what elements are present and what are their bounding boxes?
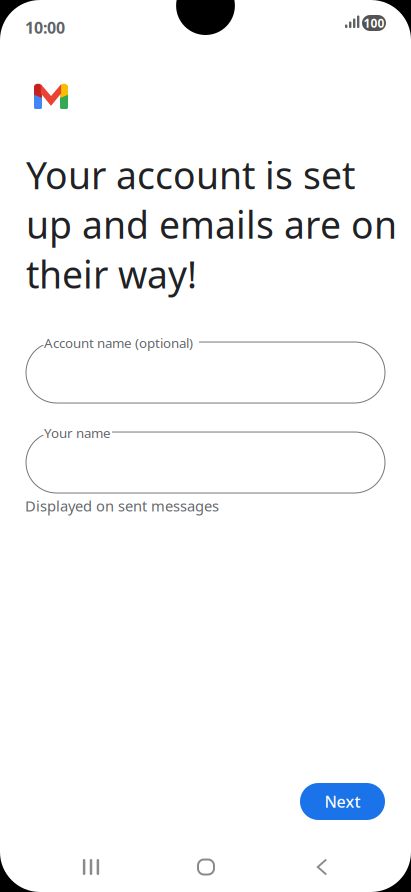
button[interactable]: Back <box>286 843 358 891</box>
button[interactable]: Your name <box>26 432 385 493</box>
staticText: 100 <box>363 15 384 31</box>
staticText: Next <box>324 791 360 812</box>
button[interactable]: Home <box>170 843 242 891</box>
button[interactable]: Next <box>300 783 385 820</box>
staticText: Your name <box>44 424 111 442</box>
staticText: 10:00 <box>25 17 65 38</box>
staticText: Account name (optional) <box>44 334 193 352</box>
button[interactable]: Recent apps <box>55 843 127 891</box>
button[interactable]: Account name (optional) <box>26 342 385 403</box>
staticText: Your account is set up and emails are on… <box>26 150 397 299</box>
staticText: Displayed on sent messages <box>25 496 219 515</box>
